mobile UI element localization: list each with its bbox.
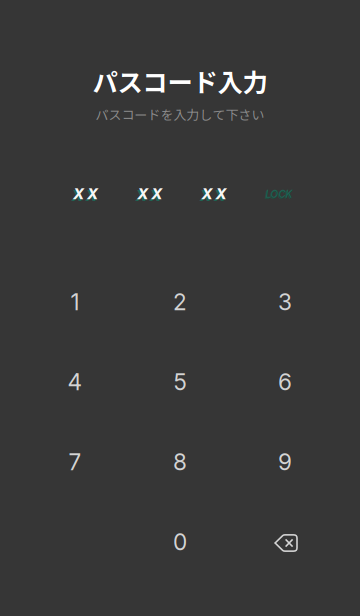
staticText: XX <box>201 185 226 203</box>
staticText: 4 <box>67 368 82 396</box>
staticText: パスコードを入力して下さい <box>95 105 264 123</box>
staticText: XX <box>137 185 162 203</box>
button[interactable]: Delete <box>234 504 338 582</box>
staticText: LOCK <box>266 188 293 200</box>
staticText: XX <box>73 185 98 203</box>
staticText: 9 <box>278 448 292 476</box>
button[interactable]: 9 <box>233 423 337 501</box>
staticText: 0 <box>173 528 187 556</box>
button[interactable]: 1 <box>23 263 127 341</box>
button[interactable]: 0 <box>128 503 232 581</box>
button[interactable]: 6 <box>233 343 337 421</box>
staticText: 8 <box>173 448 187 476</box>
staticText: XX <box>71 187 96 204</box>
staticText: XX <box>136 187 161 204</box>
staticText: XX <box>200 187 225 204</box>
staticText: 7 <box>68 448 81 476</box>
button[interactable]: 8 <box>128 423 232 501</box>
staticText: 3 <box>278 288 292 316</box>
staticText: LOCK <box>265 189 292 201</box>
button[interactable]: 7 <box>23 423 127 501</box>
staticText: 6 <box>278 368 292 396</box>
staticText: パスコード入力 <box>92 63 267 99</box>
staticText: 1 <box>70 288 79 316</box>
button[interactable]: 5 <box>128 343 232 421</box>
button[interactable]: 3 <box>233 263 337 341</box>
staticText: 2 <box>173 288 187 316</box>
button[interactable]: 2 <box>128 263 232 341</box>
button[interactable]: 4 <box>23 343 127 421</box>
staticText: 5 <box>173 368 186 396</box>
